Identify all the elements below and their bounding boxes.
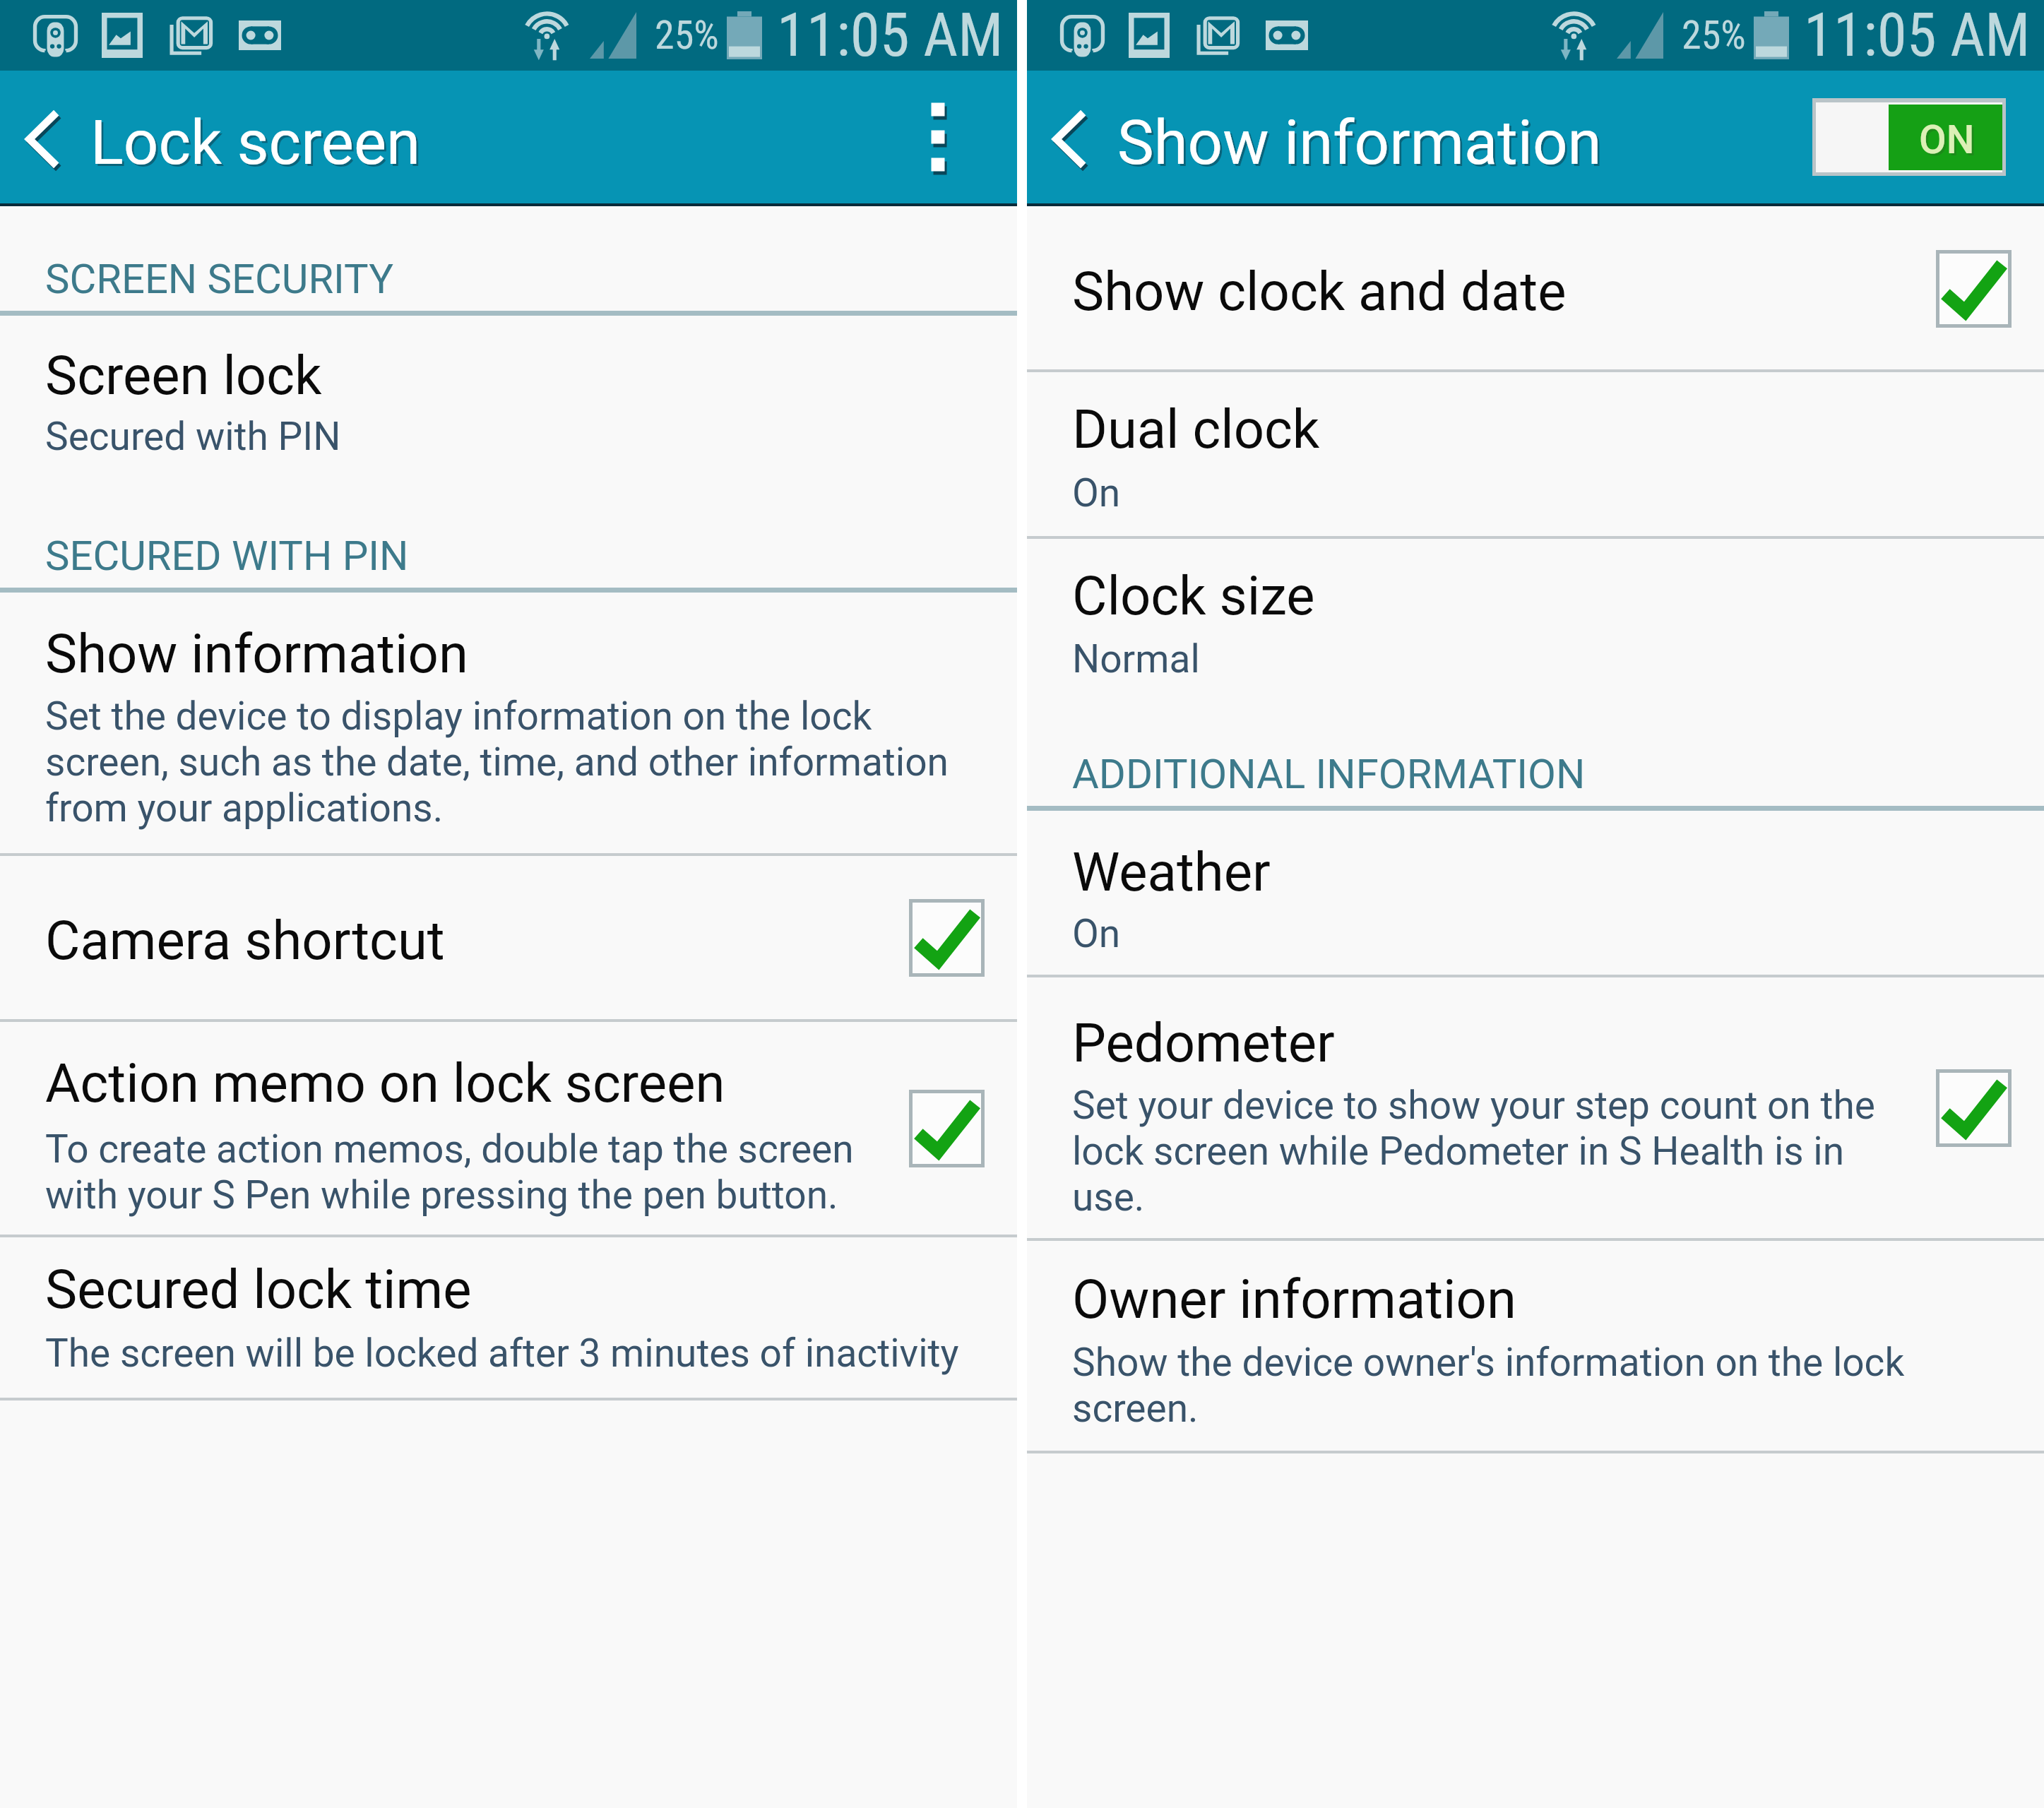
staticText: On	[1072, 470, 1121, 516]
staticText: Secured with PIN	[45, 413, 341, 459]
staticText: Show the device owner's information on t…	[1072, 1339, 1905, 1431]
staticText: Owner information	[1072, 1270, 1516, 1331]
staticText: 11:05 AM	[777, 0, 1004, 71]
staticText: Show information	[1117, 107, 1602, 179]
button[interactable]: Show clock and date checkbox, checked	[1936, 250, 2012, 328]
button[interactable]: Weather	[1027, 811, 2044, 975]
staticText: ON	[1919, 117, 1975, 163]
staticText: Secured lock time	[45, 1260, 472, 1321]
button[interactable]: Show information	[0, 593, 1017, 853]
button[interactable]: Secured lock time	[0, 1237, 1017, 1398]
staticText: ADDITIONAL INFORMATION	[1072, 750, 1586, 798]
button[interactable]: More options	[909, 83, 967, 191]
button[interactable]: Navigate up	[14, 95, 71, 179]
button[interactable]: Action memo on lock screen	[0, 1022, 1017, 1235]
staticText: Show information	[1119, 109, 1604, 181]
staticText: Show clock and date	[1072, 262, 1567, 323]
staticText: Clock size	[1072, 566, 1315, 627]
staticText: 25%	[655, 12, 719, 59]
button[interactable]: Screen lock	[0, 316, 1017, 532]
staticText: Normal	[1072, 636, 1200, 682]
button[interactable]: Pedometer	[1027, 977, 2044, 1238]
button[interactable]: Dual clock	[1027, 372, 2044, 536]
staticText: Show information	[45, 624, 468, 685]
staticText: Screen lock	[45, 346, 322, 407]
staticText: On	[1072, 910, 1121, 956]
staticText: ON	[1921, 119, 1977, 165]
button[interactable]: Camera shortcut checkbox, checked	[909, 899, 985, 977]
staticText: Lock screen	[93, 109, 423, 181]
button[interactable]: Navigate up	[1041, 95, 1098, 179]
staticText: Action memo on lock screen	[45, 1054, 725, 1114]
staticText: Pedometer	[1072, 1013, 1335, 1074]
staticText: The screen will be locked after 3 minute…	[45, 1330, 959, 1376]
staticText: SECURED WITH PIN	[45, 532, 409, 580]
staticText: Camera shortcut	[45, 911, 445, 972]
staticText: Dual clock	[1072, 400, 1320, 460]
button[interactable]: Show information toggle, on	[1812, 98, 2006, 176]
staticText: To create action memos, double tap the s…	[45, 1126, 854, 1218]
staticText: Weather	[1072, 843, 1271, 903]
button[interactable]: Action memo on lock screen checkbox, che…	[909, 1090, 985, 1167]
button[interactable]: Owner information	[1027, 1241, 2044, 1451]
staticText: Set your device to show your step count …	[1072, 1082, 1875, 1220]
button[interactable]: Pedometer checkbox, checked	[1936, 1069, 2012, 1147]
staticText: SCREEN SECURITY	[45, 255, 393, 303]
button[interactable]: Camera shortcut	[0, 856, 1017, 1019]
button[interactable]: Show clock and date	[1027, 208, 2044, 369]
staticText: 25%	[1682, 12, 1746, 59]
staticText: 11:05 AM	[1804, 0, 2031, 71]
button[interactable]: Clock size	[1027, 539, 2044, 750]
staticText: Lock screen	[90, 107, 421, 179]
staticText: Set the device to display information on…	[45, 693, 949, 831]
